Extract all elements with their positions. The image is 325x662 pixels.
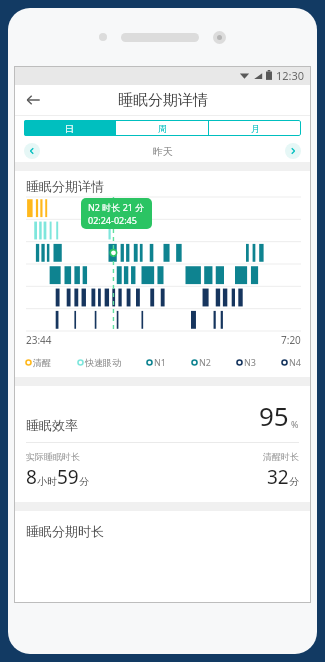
staticText: 睡眠分期详情 (26, 178, 104, 194)
staticText: 日 (65, 123, 74, 134)
staticText: 清醒时长 (263, 451, 299, 462)
button[interactable]: 月 (209, 120, 301, 136)
staticText: 分 (289, 475, 299, 488)
staticText: 分 (79, 475, 89, 488)
staticText: 昨天 (153, 145, 173, 158)
staticText: 95 (259, 398, 289, 433)
staticText: 23:44 (26, 333, 52, 347)
button[interactable]: Next day (285, 143, 301, 159)
staticText: 睡眠效率 (26, 417, 78, 433)
staticText: 02:24-02:45 (88, 214, 137, 226)
staticText: 月 (251, 123, 260, 134)
staticText: N1 (154, 356, 166, 368)
staticText: 59 (57, 464, 79, 490)
button[interactable]: 睡眠分期时长 (14, 511, 311, 571)
staticText: 实际睡眠时长 (26, 451, 80, 462)
staticText: 周 (158, 123, 167, 134)
staticText: % (291, 418, 299, 430)
staticText: 32 (267, 464, 289, 490)
button[interactable]: 日 (24, 120, 115, 136)
staticText: 8 (26, 464, 37, 490)
staticText: N2 (199, 356, 211, 368)
staticText: 小时 (37, 475, 57, 488)
button[interactable]: Previous day (24, 143, 40, 159)
staticText: 睡眠分期详情 (118, 91, 208, 110)
staticText: N3 (244, 356, 256, 368)
staticText: 睡眠分期时长 (26, 523, 104, 539)
button[interactable]: Back (20, 87, 46, 113)
staticText: 12:30 (276, 68, 305, 83)
button[interactable]: 周 (116, 120, 208, 136)
staticText: N2 时长 21 分 (88, 201, 145, 213)
staticText: 7:20 (281, 333, 301, 347)
staticText: 快速眼动 (85, 357, 121, 368)
staticText: 清醒 (33, 357, 51, 368)
staticText: N4 (289, 356, 301, 368)
